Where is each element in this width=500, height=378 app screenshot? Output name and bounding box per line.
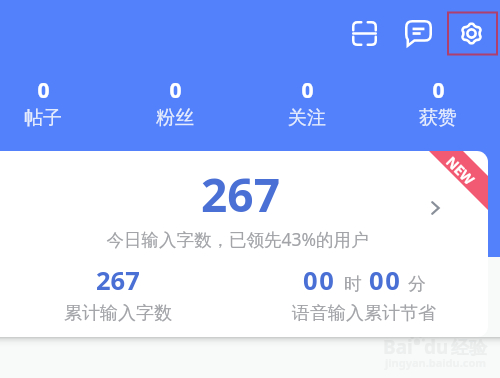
staticText: 0 — [37, 76, 50, 105]
staticText: 267 — [96, 263, 140, 298]
button[interactable]: Scan — [342, 11, 386, 55]
staticText: du — [424, 334, 449, 360]
staticText: jingyan.baidu.com — [385, 355, 487, 370]
button[interactable]: 0 — [388, 76, 488, 130]
button[interactable]: Messages — [396, 11, 440, 55]
staticText: 267 — [201, 163, 280, 226]
staticText: 0 — [169, 76, 182, 105]
button[interactable]: NEW — [0, 151, 488, 337]
staticText: 粉丝 — [156, 106, 194, 130]
staticText: 经验 — [451, 337, 487, 360]
staticText: 帖子 — [24, 106, 62, 130]
button[interactable]: 0 — [0, 76, 93, 130]
staticText: 0 — [432, 76, 445, 105]
staticText: 0 — [301, 76, 314, 105]
staticText: 时 — [344, 273, 362, 296]
staticText: NEW — [442, 152, 479, 189]
button[interactable]: 0 — [125, 76, 225, 130]
staticText: 关注 — [288, 106, 326, 130]
staticText: 今日输入字数，已领先43%的用户 — [106, 227, 369, 251]
staticText: 获赞 — [419, 106, 457, 130]
staticText: 分 — [408, 273, 426, 296]
staticText: Bai — [383, 334, 413, 360]
staticText: 00 — [369, 263, 402, 298]
button[interactable]: Settings — [449, 11, 493, 55]
staticText: 语音输入累计节省 — [292, 302, 436, 325]
button[interactable]: 0 — [257, 76, 357, 130]
staticText: 00 — [303, 263, 336, 298]
staticText: 累计输入字数 — [64, 302, 172, 325]
